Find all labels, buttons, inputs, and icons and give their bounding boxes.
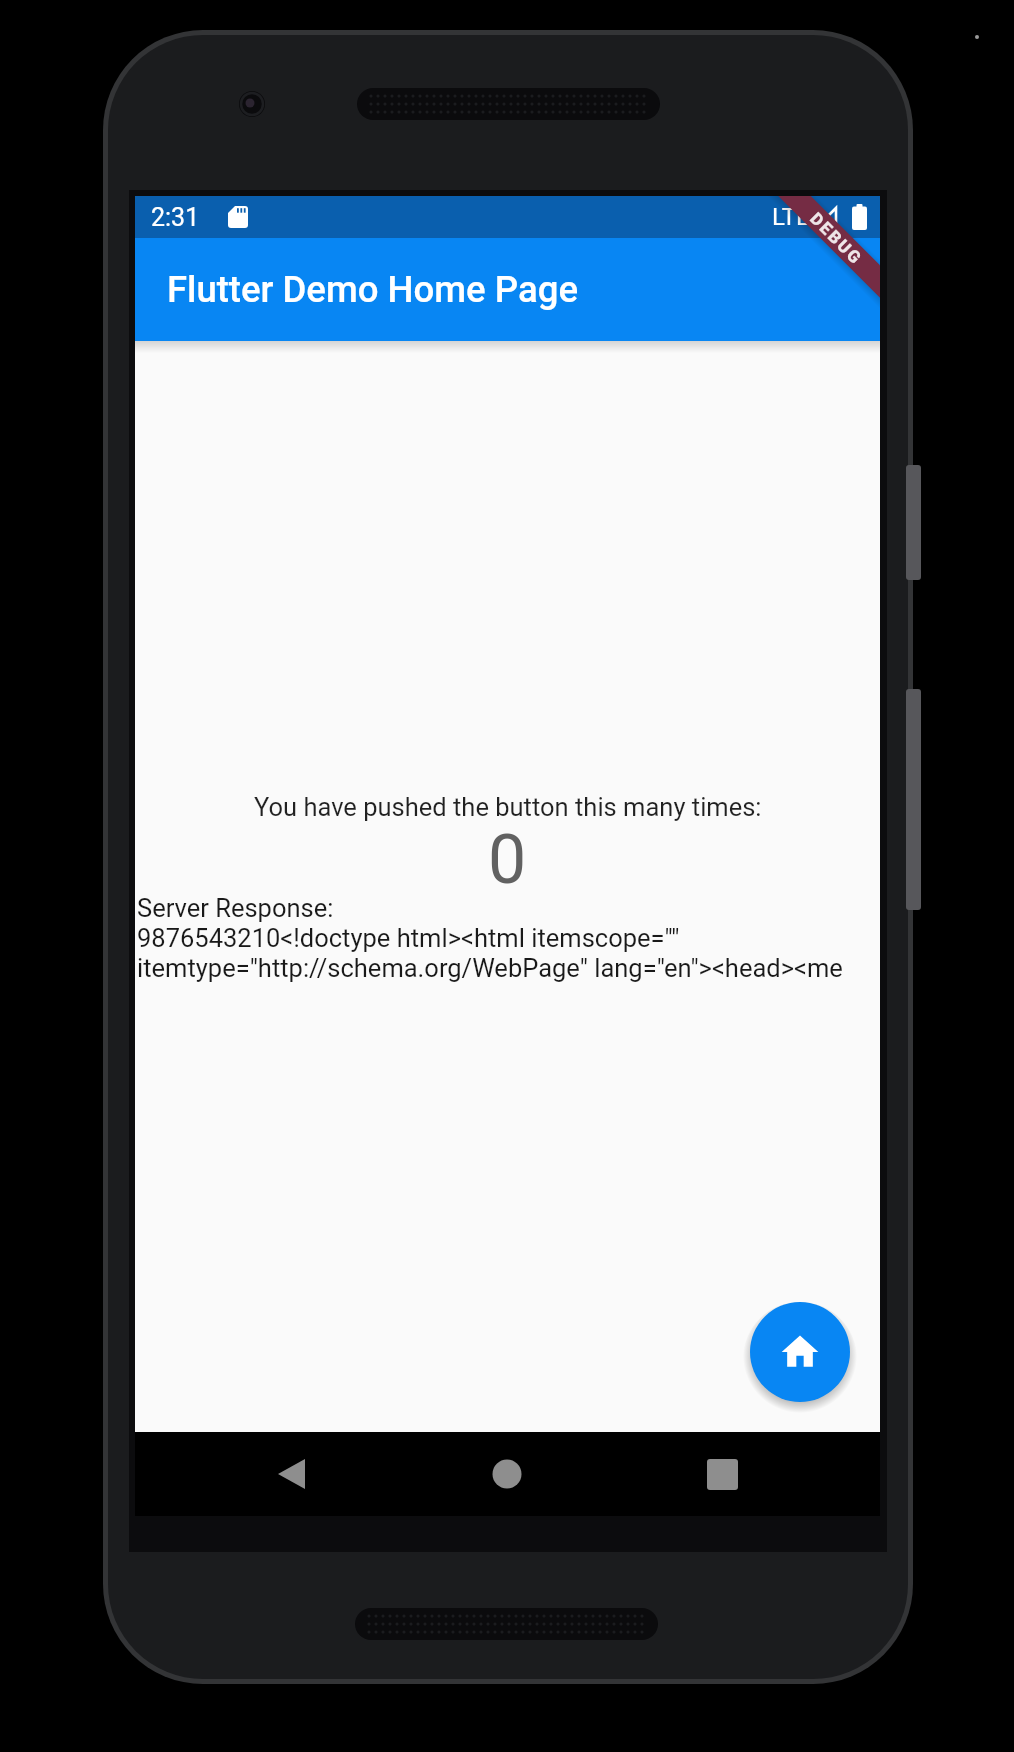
button[interactable] [477, 1444, 537, 1504]
staticText: 0 [488, 820, 527, 900]
button[interactable] [750, 1302, 850, 1402]
button[interactable] [261, 1444, 321, 1504]
staticText: itemtype="http://schema.org/WebPage" lan… [137, 953, 843, 983]
staticText: Flutter Demo Home Page [167, 268, 578, 311]
staticText: 9876543210<!doctype html><html itemscope… [137, 923, 680, 953]
staticText: Server Response: [137, 893, 334, 923]
staticText: LTE [772, 203, 810, 231]
staticText: You have pushed the button this many tim… [254, 792, 762, 822]
staticText: 2:31 [151, 203, 200, 232]
staticText: DEBUG [806, 208, 867, 269]
button[interactable] [692, 1444, 752, 1504]
